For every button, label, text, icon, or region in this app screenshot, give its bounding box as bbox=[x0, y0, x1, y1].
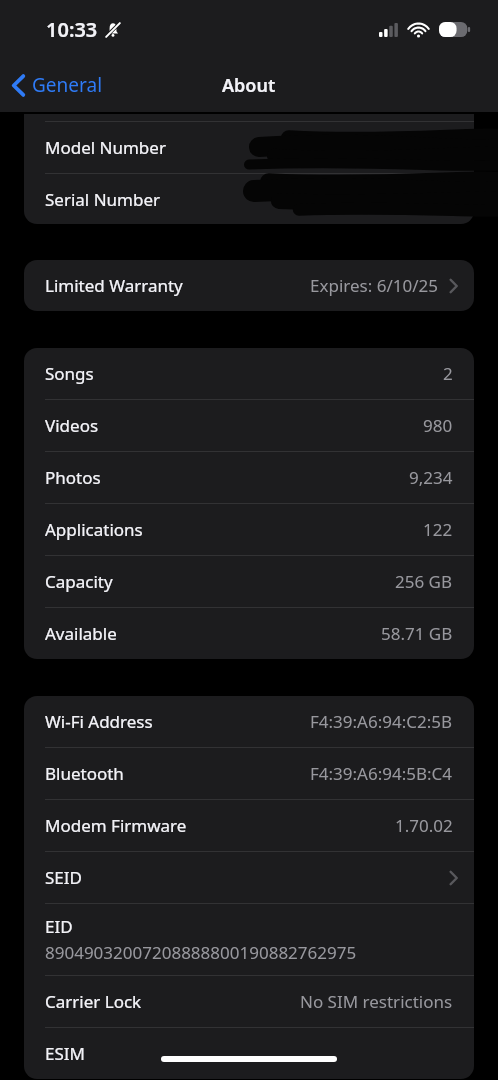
staticText: EID bbox=[45, 915, 73, 938]
button[interactable]: Bluetooth bbox=[24, 748, 474, 799]
button[interactable]: Modem Firmware bbox=[24, 800, 474, 851]
staticText: 89049032007208888800190882762975 bbox=[45, 941, 357, 964]
staticText: 2 bbox=[443, 362, 453, 385]
staticText: 256 GB bbox=[395, 570, 453, 593]
staticText: Carrier Lock bbox=[45, 990, 142, 1013]
staticText: Songs bbox=[45, 362, 94, 385]
button[interactable]: Serial Number bbox=[24, 174, 474, 224]
button[interactable]: EID bbox=[24, 904, 474, 975]
staticText: No SIM restrictions bbox=[300, 990, 453, 1013]
staticText: 58.71 GB bbox=[381, 622, 453, 645]
button[interactable]: Limited Warranty bbox=[24, 260, 474, 311]
staticText: 9,234 bbox=[409, 466, 453, 489]
staticText: Modem Firmware bbox=[45, 814, 187, 837]
staticText: Capacity bbox=[45, 570, 113, 593]
staticText: Limited Warranty bbox=[45, 274, 183, 297]
button[interactable]: Applications bbox=[24, 504, 474, 555]
staticText: Photos bbox=[45, 466, 101, 489]
button[interactable]: Capacity bbox=[24, 556, 474, 607]
button[interactable]: Model Number bbox=[24, 122, 474, 173]
staticText: Serial Number bbox=[45, 188, 161, 211]
staticText: General bbox=[32, 72, 103, 98]
other: Open Limited Warranty bbox=[449, 278, 458, 294]
staticText: F4:39:A6:94:5B:C4 bbox=[310, 762, 453, 785]
button[interactable]: Videos bbox=[24, 400, 474, 451]
button[interactable]: Carrier Lock bbox=[24, 976, 474, 1027]
button[interactable]: Available bbox=[24, 608, 474, 659]
button[interactable]: Songs bbox=[24, 348, 474, 399]
staticText: About bbox=[222, 73, 276, 98]
staticText: SEID bbox=[45, 866, 82, 889]
button[interactable]: Photos bbox=[24, 452, 474, 503]
staticText: ESIM bbox=[45, 1042, 85, 1065]
staticText: Applications bbox=[45, 518, 143, 541]
button[interactable]: ESIM bbox=[24, 1028, 474, 1079]
staticText: Wi-Fi Address bbox=[45, 710, 153, 733]
staticText: Videos bbox=[45, 414, 99, 437]
button[interactable]: General bbox=[0, 64, 115, 106]
staticText: 122 bbox=[423, 518, 453, 541]
staticText: Model Number bbox=[45, 136, 166, 159]
staticText: F4:39:A6:94:C2:5B bbox=[310, 710, 453, 733]
staticText: Available bbox=[45, 622, 117, 645]
button[interactable]: Wi-Fi Address bbox=[24, 696, 474, 747]
staticText: 10:33 bbox=[46, 16, 98, 43]
staticText: 1.70.02 bbox=[395, 814, 453, 837]
staticText: 980 bbox=[423, 414, 453, 437]
staticText: Expires: 6/10/25 bbox=[310, 274, 438, 297]
staticText: Bluetooth bbox=[45, 762, 124, 785]
other: Open SEID bbox=[449, 870, 458, 886]
button[interactable]: SEID bbox=[24, 852, 474, 903]
